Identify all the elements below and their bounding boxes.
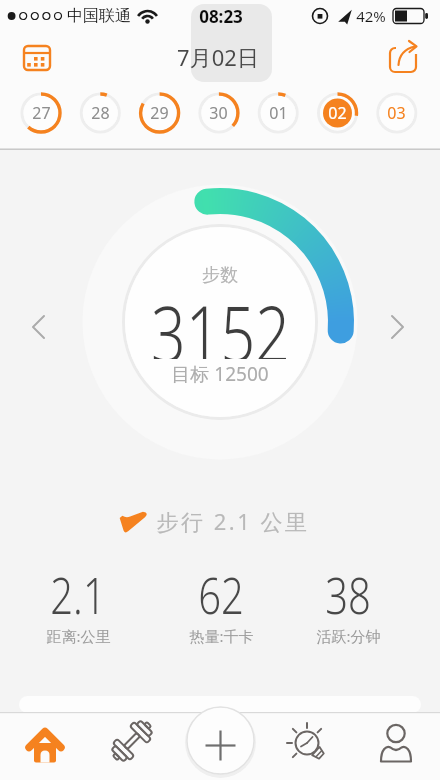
staticText: 62 bbox=[198, 561, 244, 629]
staticText: 7月02日 bbox=[177, 42, 259, 72]
button[interactable] bbox=[20, 305, 60, 349]
staticText: 02 bbox=[328, 102, 347, 124]
button[interactable] bbox=[256, 91, 300, 135]
button[interactable] bbox=[16, 40, 60, 76]
button[interactable] bbox=[187, 707, 254, 774]
staticText: 03 bbox=[387, 102, 406, 124]
staticText: 42% bbox=[356, 6, 386, 26]
staticText: 38 bbox=[325, 561, 371, 629]
button[interactable] bbox=[137, 91, 181, 135]
staticText: 28 bbox=[91, 102, 110, 124]
button[interactable] bbox=[315, 91, 359, 135]
button[interactable] bbox=[19, 91, 63, 135]
staticText: 步行 2.1 公里 bbox=[156, 506, 310, 536]
button[interactable] bbox=[78, 91, 122, 135]
button[interactable] bbox=[102, 714, 162, 778]
button[interactable] bbox=[196, 91, 240, 135]
staticText: 01 bbox=[269, 102, 288, 124]
staticText: 活跃:分钟 bbox=[316, 626, 381, 646]
button[interactable] bbox=[366, 714, 426, 778]
button[interactable] bbox=[374, 91, 418, 135]
staticText: 2.1 bbox=[50, 561, 106, 629]
staticText: 30 bbox=[209, 102, 228, 124]
staticText: 距离:公里 bbox=[46, 626, 111, 646]
staticText: 步数 bbox=[202, 264, 238, 287]
button[interactable] bbox=[382, 40, 426, 76]
button[interactable] bbox=[15, 714, 75, 778]
staticText: 29 bbox=[150, 102, 169, 124]
staticText: 3152 bbox=[151, 279, 290, 359]
staticText: 08:23 bbox=[199, 5, 243, 28]
button[interactable] bbox=[278, 714, 338, 778]
staticText: 中国联通 bbox=[67, 6, 131, 26]
staticText: 27 bbox=[32, 102, 51, 124]
staticText: 目标 12500 bbox=[171, 361, 269, 387]
staticText: 热量:千卡 bbox=[189, 626, 254, 646]
button[interactable] bbox=[380, 305, 420, 349]
